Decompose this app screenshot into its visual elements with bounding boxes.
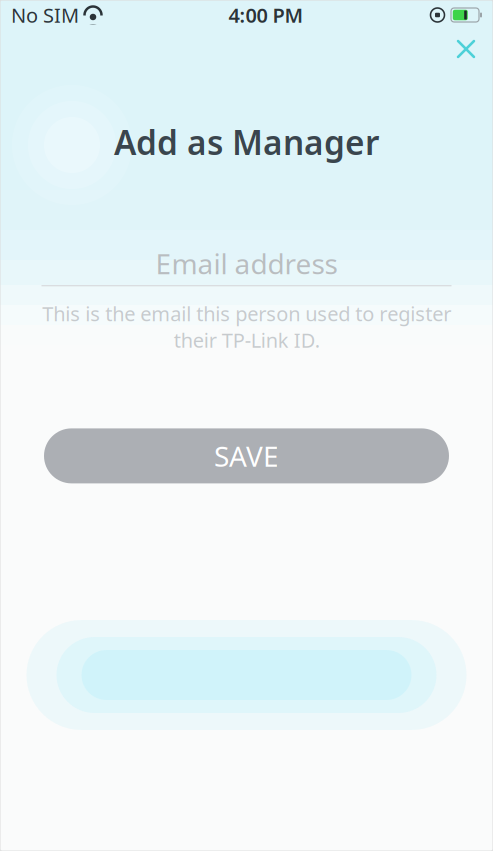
button[interactable]: SAVE bbox=[44, 428, 449, 483]
button[interactable]: Close bbox=[444, 30, 488, 68]
staticText: SAVE bbox=[214, 437, 279, 474]
staticText: Email address bbox=[155, 245, 337, 282]
staticText: Add as Manager bbox=[114, 120, 379, 164]
staticText: 4:00 PM bbox=[228, 2, 303, 28]
staticText: No SIM bbox=[11, 2, 79, 28]
staticText: This is the email this person used to re… bbox=[42, 300, 451, 353]
